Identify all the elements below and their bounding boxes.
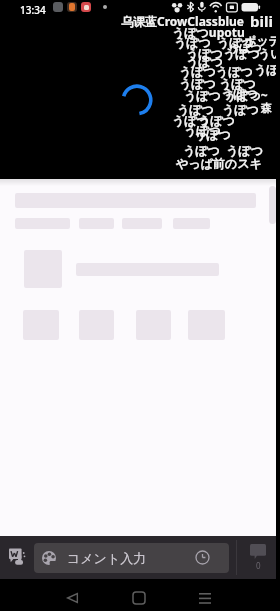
staticText: うぽつ: [222, 102, 259, 117]
staticText: うぽつ: [198, 113, 235, 128]
staticText: 森: [261, 101, 272, 115]
button[interactable]: Comments, 0: [240, 536, 276, 579]
staticText: 乌课蓝CrowClassblue: [121, 13, 245, 29]
staticText: うぽつ: [194, 127, 231, 142]
staticText: 13:34: [20, 3, 46, 17]
staticText: うぽつ: [174, 35, 211, 50]
staticText: うぽつ: [228, 41, 262, 55]
staticText: うぽつ: [172, 113, 209, 128]
staticText: うぽつ: [186, 46, 223, 61]
staticText: うぽつ: [186, 54, 223, 69]
staticText: うぽつ うぽつ~: [184, 87, 268, 103]
staticText: 0: [256, 560, 261, 571]
staticText: うぽつうぽつ: [179, 64, 253, 79]
staticText: うい: [258, 46, 280, 61]
staticText: ポッデ: [244, 33, 280, 48]
button[interactable]: Recent apps: [175, 579, 235, 611]
button[interactable]: Back: [42, 579, 102, 611]
staticText: うぽつ: [217, 35, 254, 50]
staticText: うぽつ うぽつ: [183, 142, 263, 158]
button[interactable]: Comment list: [0, 536, 34, 579]
staticText: うぽ: [254, 62, 279, 77]
staticText: うぽつ うぽつ: [179, 75, 256, 91]
staticText: コメント入力: [67, 550, 147, 566]
staticText: bili: [250, 11, 273, 31]
staticText: うぽつ: [223, 46, 260, 61]
staticText: うぽつ: [221, 86, 258, 101]
staticText: やっぱ前のスキ: [176, 156, 262, 171]
button[interactable]: Home: [109, 579, 169, 611]
staticText: うぽつ: [184, 123, 221, 138]
staticText: うぽつupotu: [172, 24, 245, 40]
button[interactable]: コメント入力: [34, 543, 229, 573]
staticText: うぽつ: [177, 102, 214, 117]
